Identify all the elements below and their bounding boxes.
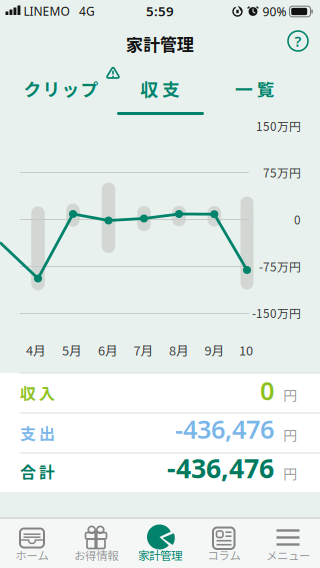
staticText: 家計管理 — [138, 547, 182, 563]
staticText: 7月 — [133, 341, 153, 359]
staticText: 0 — [294, 211, 301, 228]
staticText: ク リ ッ プ — [23, 76, 98, 101]
staticText: 家計管理 — [126, 31, 194, 56]
staticText: -150万円 — [252, 304, 301, 321]
staticText: ホーム — [15, 547, 48, 563]
staticText: -436,476 — [167, 450, 274, 486]
button[interactable]: お得情報 — [64, 518, 128, 568]
staticText: -436,476 — [175, 412, 274, 446]
staticText: LINEMO — [23, 3, 69, 19]
staticText: 6月 — [98, 341, 118, 359]
staticText: 円 — [283, 385, 297, 405]
staticText: 10 — [239, 341, 253, 359]
staticText: 一 覧 — [235, 76, 275, 101]
staticText: 5:59 — [146, 2, 174, 20]
button[interactable]: ? — [282, 25, 314, 57]
staticText: 支 出 — [20, 421, 55, 445]
button[interactable]: コラム — [192, 518, 256, 568]
staticText: 0 — [260, 374, 274, 407]
staticText: -75万円 — [259, 258, 301, 275]
staticText: 円 — [283, 425, 297, 445]
button[interactable]: 収 支 — [112, 66, 208, 110]
staticText: 150万円 — [256, 117, 301, 134]
staticText: 9月 — [204, 341, 224, 359]
button[interactable]: メニュー — [256, 518, 320, 568]
staticText: 5月 — [62, 341, 82, 359]
staticText: 8月 — [169, 341, 189, 359]
staticText: 収 入 — [20, 381, 55, 405]
staticText: 4G — [79, 3, 95, 19]
staticText: 75万円 — [263, 164, 301, 181]
staticText: コラム — [207, 547, 240, 563]
staticText: ? — [294, 31, 301, 51]
staticText: 90% — [262, 3, 286, 19]
staticText: 円 — [283, 463, 297, 484]
staticText: お得情報 — [74, 547, 118, 563]
button[interactable]: ホーム — [0, 518, 64, 568]
staticText: 4月 — [26, 341, 46, 359]
staticText: 収 支 — [140, 76, 180, 101]
button[interactable]: 一 覧 — [207, 66, 303, 110]
button[interactable]: 家計管理 — [128, 518, 192, 568]
staticText: 合 計 — [20, 460, 55, 483]
staticText: メニュー — [266, 547, 310, 563]
button[interactable]: ク リ ッ プ — [13, 66, 109, 110]
